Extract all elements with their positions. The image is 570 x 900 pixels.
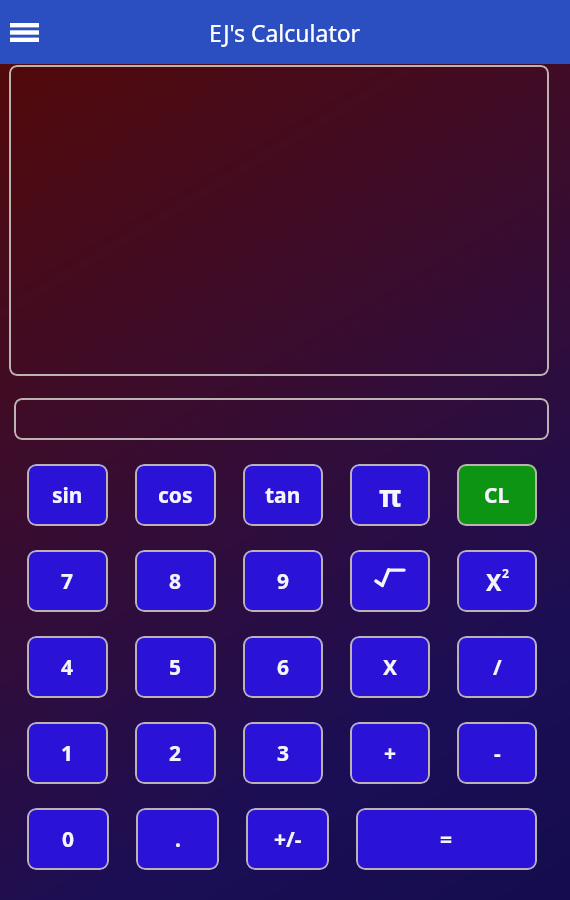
button[interactable]: tan	[243, 464, 323, 526]
button[interactable]: /	[457, 636, 537, 698]
button[interactable]: 4	[27, 636, 108, 698]
button[interactable]: 6	[243, 636, 323, 698]
button[interactable]: .	[136, 808, 219, 870]
button[interactable]: sin	[27, 464, 108, 526]
button[interactable]: 0	[27, 808, 109, 870]
staticText: +	[384, 739, 397, 768]
staticText: 2	[502, 565, 509, 581]
staticText: 0	[62, 825, 75, 854]
staticText: -	[494, 739, 501, 768]
button[interactable]: +/-	[246, 808, 329, 870]
staticText: 7	[61, 567, 74, 596]
button[interactable]: Menu	[1, 9, 47, 55]
staticText: /	[493, 653, 502, 682]
button[interactable]: cos	[135, 464, 216, 526]
button[interactable]: 8	[135, 550, 216, 612]
staticText: 1	[61, 739, 74, 768]
button[interactable]	[350, 550, 430, 612]
staticText: +/-	[274, 825, 302, 854]
staticText: 5	[169, 653, 182, 682]
button[interactable]: 1	[27, 722, 108, 784]
staticText: cos	[158, 481, 193, 510]
staticText: =	[440, 825, 453, 854]
staticText: CL	[484, 481, 510, 510]
button[interactable]: 5	[135, 636, 216, 698]
button[interactable]	[9, 65, 549, 376]
staticText: 4	[61, 653, 74, 682]
button[interactable]: 3	[243, 722, 323, 784]
button[interactable]: 2	[135, 722, 216, 784]
staticText: tan	[265, 481, 301, 510]
button[interactable]	[14, 398, 549, 440]
button[interactable]: CL	[457, 464, 537, 526]
button[interactable]: π	[350, 464, 430, 526]
staticText: 8	[169, 567, 182, 596]
staticText: sin	[52, 481, 83, 510]
staticText: π	[379, 475, 402, 516]
button[interactable]: =	[356, 808, 537, 870]
button[interactable]: 9	[243, 550, 323, 612]
staticText: 6	[277, 653, 290, 682]
staticText: .	[175, 825, 181, 854]
staticText: EJ's Calculator	[209, 17, 361, 48]
staticText: 2	[169, 739, 182, 768]
staticText: X	[486, 566, 502, 597]
button[interactable]: X	[457, 550, 537, 612]
staticText: X	[383, 653, 398, 682]
button[interactable]: -	[457, 722, 537, 784]
button[interactable]: +	[350, 722, 430, 784]
button[interactable]: 7	[27, 550, 108, 612]
staticText: 3	[277, 739, 290, 768]
button[interactable]: X	[350, 636, 430, 698]
staticText: 9	[277, 567, 290, 596]
